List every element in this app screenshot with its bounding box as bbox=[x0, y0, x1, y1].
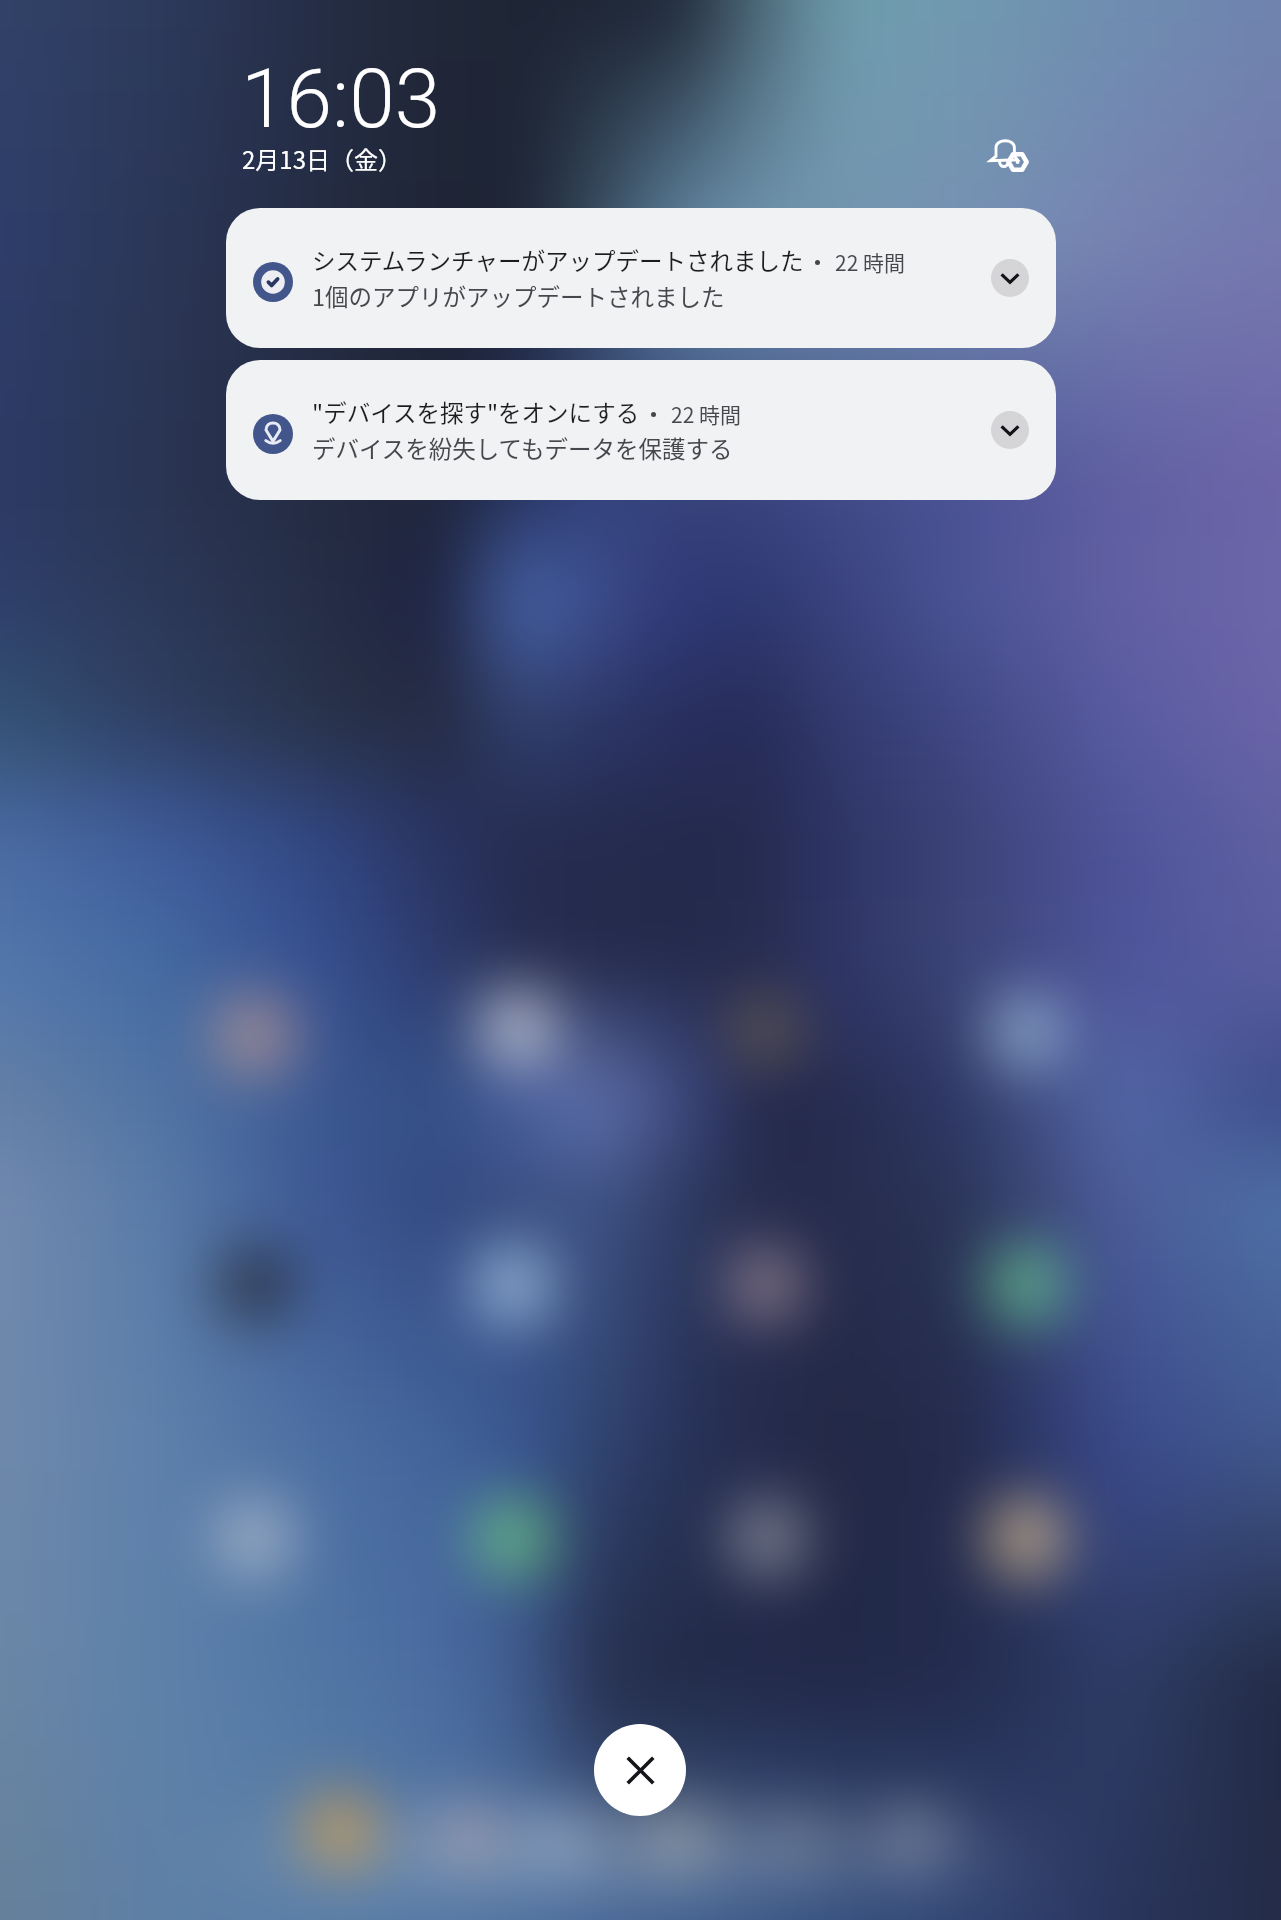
button[interactable]: Notification settings bbox=[968, 114, 1048, 194]
staticText: 22 時間 bbox=[671, 399, 742, 429]
staticText: "デバイスを探す"をオンにする bbox=[312, 395, 640, 429]
staticText: 2月13日（金） bbox=[242, 141, 402, 176]
staticText: 16:03 bbox=[241, 51, 441, 147]
button[interactable]: Close bbox=[594, 1724, 686, 1816]
button[interactable]: システムランチャーがアップデートされました bbox=[226, 208, 1056, 348]
staticText: システムランチャーがアップデートされました bbox=[312, 243, 804, 277]
button[interactable]: "デバイスを探す"をオンにする bbox=[226, 360, 1056, 500]
button[interactable]: Expand bbox=[991, 259, 1029, 297]
staticText: 22 時間 bbox=[835, 247, 906, 277]
staticText: 1個のアプリがアップデートされました bbox=[312, 279, 725, 313]
button[interactable]: Expand bbox=[991, 411, 1029, 449]
staticText: デバイスを紛失してもデータを保護する bbox=[312, 431, 733, 465]
